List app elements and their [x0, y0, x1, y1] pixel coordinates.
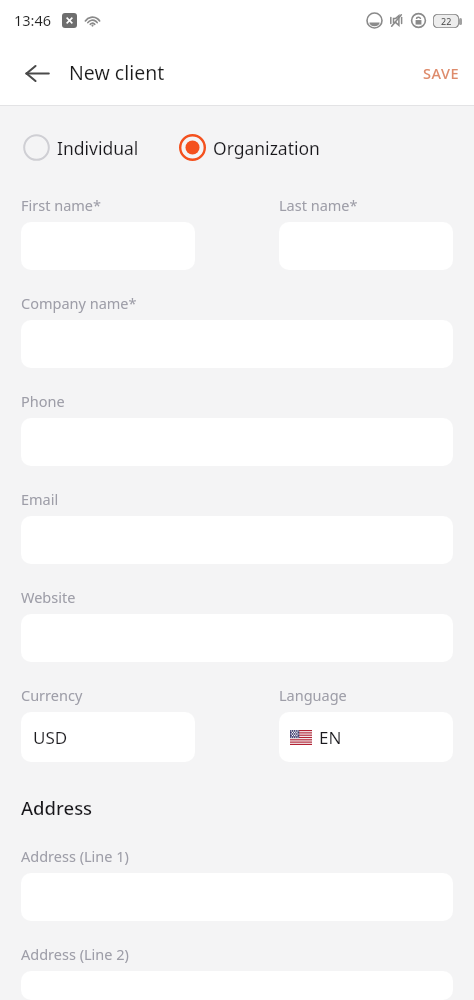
staticText: 13:46	[14, 10, 52, 30]
staticText: Currency	[21, 685, 83, 705]
staticText: Organization	[213, 136, 320, 160]
staticText: Website	[21, 587, 76, 607]
button[interactable]: Back	[12, 48, 62, 98]
staticText: EN	[319, 726, 342, 749]
staticText: Address	[21, 795, 93, 820]
button[interactable]: Organization	[177, 128, 322, 167]
staticText: New client	[69, 59, 165, 86]
staticText: First name*	[21, 195, 102, 215]
staticText: SAVE	[423, 63, 460, 83]
staticText: Last name*	[279, 195, 358, 215]
button[interactable]: EN	[279, 712, 453, 762]
button[interactable]: USD	[21, 712, 195, 762]
staticText: Individual	[57, 136, 139, 160]
button[interactable]: SAVE	[409, 53, 474, 93]
staticText: 22	[441, 15, 452, 27]
staticText: Company name*	[21, 293, 137, 313]
button[interactable]: Individual	[21, 128, 141, 167]
staticText: Phone	[21, 391, 65, 411]
staticText: Address (Line 2)	[21, 944, 129, 964]
staticText: Language	[279, 685, 347, 705]
staticText: USD	[33, 726, 68, 749]
staticText: Email	[21, 489, 59, 509]
staticText: Address (Line 1)	[21, 846, 129, 866]
